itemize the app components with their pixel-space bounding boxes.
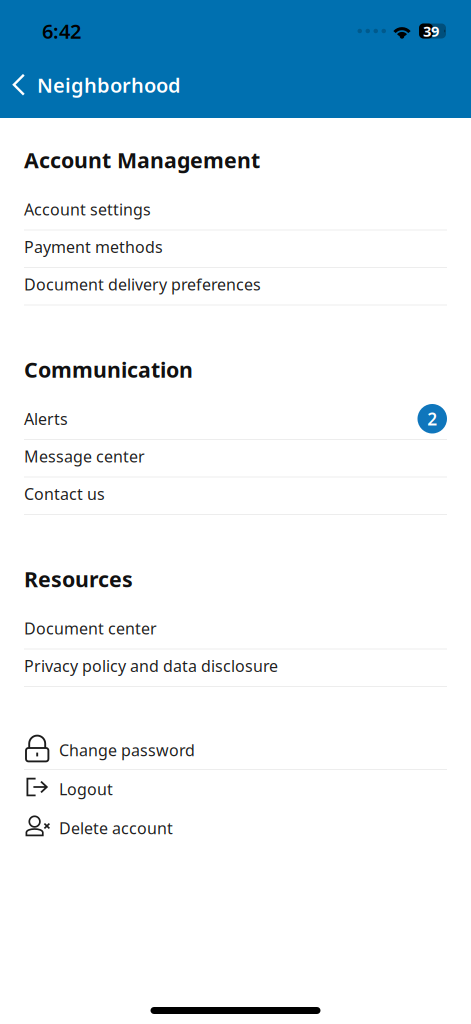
button[interactable]: Alerts (0, 402, 471, 440)
staticText: Account Management (24, 146, 260, 174)
button[interactable]: Message center (0, 440, 471, 477)
staticText: Message center (24, 446, 145, 467)
button[interactable]: Privacy policy and data disclosure (0, 649, 471, 687)
button[interactable]: Change password (0, 731, 471, 770)
staticText: Contact us (24, 483, 105, 504)
staticText: Alerts (24, 408, 68, 429)
staticText: Communication (24, 355, 193, 384)
staticText: 2 (427, 407, 437, 430)
staticText: Document delivery preferences (24, 274, 261, 295)
button[interactable]: Payment methods (0, 230, 471, 268)
button[interactable]: Account settings (0, 193, 471, 230)
button[interactable]: Neighborhood (0, 69, 197, 107)
staticText: Logout (59, 778, 113, 800)
staticText: Delete account (59, 817, 173, 839)
staticText: Neighborhood (37, 72, 181, 98)
staticText: Resources (24, 565, 133, 593)
staticText: 6:42 (42, 18, 81, 44)
button[interactable]: Contact us (0, 477, 471, 515)
staticText: Document center (24, 618, 157, 639)
staticText: Change password (59, 739, 195, 761)
staticText: Payment methods (24, 236, 163, 257)
staticText: Account settings (24, 199, 151, 220)
button[interactable]: Document center (0, 612, 471, 649)
staticText: Privacy policy and data disclosure (24, 655, 278, 676)
button[interactable]: Logout (0, 770, 471, 809)
button[interactable]: Delete account (0, 809, 471, 848)
staticText: 39 (423, 21, 439, 41)
button[interactable]: Document delivery preferences (0, 268, 471, 305)
